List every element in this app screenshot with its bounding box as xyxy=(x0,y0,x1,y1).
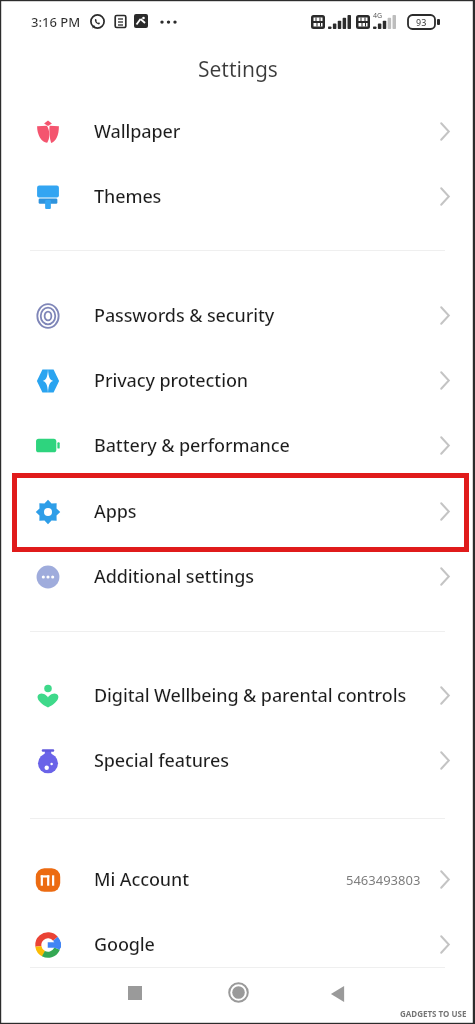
staticText: Battery & performance xyxy=(94,433,290,458)
button[interactable]: Battery & performance xyxy=(0,413,475,478)
staticText: 3:16 PM xyxy=(31,13,81,31)
button[interactable]: Back xyxy=(317,973,358,1014)
button[interactable]: Mi Account xyxy=(0,847,475,912)
staticText: Mi Account xyxy=(94,867,189,892)
button[interactable]: Google xyxy=(0,912,475,977)
staticText: Google xyxy=(94,932,155,957)
staticText: Passwords & security xyxy=(94,303,275,328)
button[interactable]: Recent apps xyxy=(114,972,155,1013)
staticText: Apps xyxy=(94,499,137,524)
staticText: Privacy protection xyxy=(94,368,248,393)
staticText: Settings xyxy=(198,55,278,84)
button[interactable]: Apps xyxy=(0,479,475,544)
staticText: Special features xyxy=(94,748,229,773)
button[interactable]: Wallpaper xyxy=(0,99,475,164)
button[interactable]: Digital Wellbeing & parental controls xyxy=(0,663,475,728)
staticText: 5463493803 xyxy=(346,871,421,889)
staticText: 4G xyxy=(373,11,383,21)
staticText: GADGETS TO USE xyxy=(400,1008,467,1019)
button[interactable]: Passwords & security xyxy=(0,283,475,348)
staticText: 93 xyxy=(416,16,427,28)
staticText: Wallpaper xyxy=(94,119,181,144)
button[interactable]: Themes xyxy=(0,164,475,229)
button[interactable]: Privacy protection xyxy=(0,348,475,413)
staticText: Themes xyxy=(94,184,162,209)
staticText: Additional settings xyxy=(94,564,254,589)
button[interactable]: Special features xyxy=(0,728,475,793)
button[interactable]: Additional settings xyxy=(0,544,475,609)
staticText: Digital Wellbeing & parental controls xyxy=(94,683,407,708)
button[interactable]: Home xyxy=(218,972,259,1013)
